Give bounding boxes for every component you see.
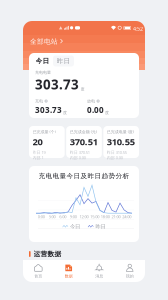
staticText: 昨日 (56, 57, 70, 65)
staticText: 昨日 (95, 223, 105, 230)
staticText: 12:00 (79, 214, 88, 219)
button[interactable]: 今日 (32, 55, 53, 66)
staticText: 度 (80, 87, 84, 92)
staticText: 内部 0.00 (107, 155, 123, 160)
button[interactable]: 昨日 (53, 55, 74, 66)
staticText: 运营数据 (34, 250, 62, 258)
staticText: 充电电量 (35, 70, 51, 75)
staticText: 昨日 370.51 (70, 150, 90, 155)
staticText: 全部电站 (30, 37, 58, 46)
staticText: 9:00 (70, 214, 77, 219)
staticText: 15:00 (90, 214, 99, 219)
staticText: 内部 1 (32, 155, 43, 160)
staticText: 昨日 310.55 (107, 150, 127, 155)
staticText: 已完成电量 (度) (107, 129, 134, 134)
staticText: 0.00 (87, 104, 104, 115)
staticText: 24:00 (122, 214, 131, 219)
staticText: 已完成量 (个) (32, 129, 55, 134)
staticText: 18:00 (101, 214, 110, 219)
staticText: 370.51 (70, 135, 98, 148)
staticText: 303.73 (35, 75, 79, 93)
staticText: 我的 (126, 274, 134, 279)
staticText: 内部 0.00 (70, 155, 86, 160)
staticText: 数据 (65, 274, 73, 279)
staticText: 0:00 (38, 214, 45, 219)
staticText: 3:00 (48, 214, 55, 219)
button[interactable]: 全部电站 (23, 35, 145, 48)
staticText: 充电电量今日及昨日趋势分析 (38, 172, 129, 180)
staticText: 6:00 (59, 214, 66, 219)
staticText: 消息 (95, 274, 103, 279)
staticText: 21:00 (111, 214, 120, 219)
staticText: 303.73 (35, 104, 62, 115)
staticText: 今日 (35, 57, 49, 65)
button[interactable]: 数据 (53, 260, 84, 282)
staticText: 度 (63, 110, 67, 115)
staticText: 充电 (35, 99, 43, 103)
staticText: 昨日 19 (32, 150, 45, 155)
staticText: 310.55 (107, 135, 135, 148)
button[interactable]: 消息 (84, 260, 114, 282)
staticText: 今日 (70, 223, 80, 230)
staticText: 已完成金额 (元) (70, 129, 97, 134)
staticText: 放电 (87, 99, 95, 103)
staticText: 4:52 (133, 25, 143, 32)
staticText: 20 (32, 135, 42, 148)
button[interactable]: 首页 (23, 260, 53, 282)
staticText: 度 (105, 110, 109, 115)
button[interactable]: 我的 (114, 260, 145, 282)
staticText: 首页 (34, 274, 42, 279)
